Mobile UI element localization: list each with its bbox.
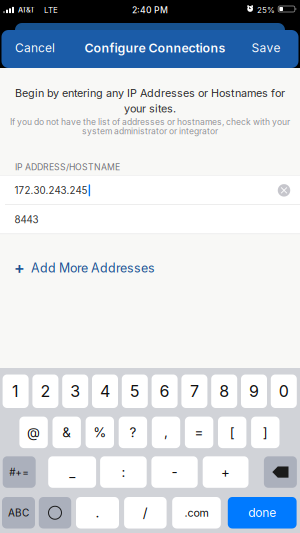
button[interactable]: Next keyboard (39, 497, 71, 528)
staticText: : (121, 464, 125, 480)
button[interactable]: ] (251, 417, 279, 448)
button[interactable]: / (124, 497, 167, 528)
button[interactable]: .com (172, 497, 221, 528)
button[interactable]: 172.30.243.245 (0, 176, 300, 205)
button[interactable]: @ (19, 417, 48, 448)
staticText: AT&T (18, 6, 35, 14)
staticText: _ (69, 464, 75, 480)
staticText: + (221, 464, 230, 480)
staticText: 1 (12, 382, 19, 401)
button[interactable]: 8 (211, 374, 237, 408)
button[interactable]: 9 (241, 374, 267, 408)
button[interactable]: 3 (62, 374, 88, 408)
button[interactable]: ABC (2, 497, 35, 528)
button[interactable]: _ (48, 456, 96, 488)
button[interactable]: done (228, 497, 297, 528)
staticText: system administrator or integrator (82, 126, 218, 136)
button[interactable]: Save (244, 34, 288, 62)
staticText: - (171, 464, 177, 480)
staticText: , (164, 424, 168, 440)
button[interactable]: ? (119, 417, 147, 448)
button[interactable]: Cancel (9, 34, 61, 62)
staticText: 4 (100, 382, 110, 401)
staticText: 9 (249, 382, 259, 401)
button[interactable]: = (185, 417, 213, 448)
staticText: If you do not have the list of addresses… (10, 117, 290, 127)
button[interactable]: , (152, 417, 180, 448)
staticText: ABC (8, 507, 29, 519)
staticText: + (14, 258, 25, 278)
button[interactable]: % (86, 417, 114, 448)
staticText: LTE (44, 5, 58, 15)
staticText: Cancel (15, 41, 55, 55)
button[interactable]: & (52, 417, 81, 448)
staticText: 7 (190, 382, 199, 401)
button[interactable]: 5 (122, 374, 148, 408)
staticText: ? (129, 424, 136, 440)
button[interactable]: 1 (3, 374, 29, 408)
staticText: 172.30.243.245 (14, 184, 87, 196)
button[interactable]: [ (218, 417, 246, 448)
staticText: . (95, 505, 99, 521)
staticText: / (143, 505, 148, 521)
button[interactable]: #+= (3, 456, 36, 488)
staticText: Add More Addresses (31, 260, 155, 275)
staticText: 2 (40, 382, 50, 401)
staticText: your sites. (124, 102, 176, 115)
button[interactable]: + (0, 253, 300, 283)
staticText: 8443 (14, 214, 38, 226)
staticText: IP ADDRESS/HOSTNAME (15, 162, 120, 172)
staticText: & (62, 424, 71, 440)
staticText: .com (184, 506, 208, 519)
staticText: [ (230, 424, 235, 440)
staticText: ] (263, 424, 268, 440)
staticText: Configure Connections (84, 40, 225, 55)
staticText: @ (27, 424, 40, 440)
button[interactable]: 7 (181, 374, 207, 408)
button[interactable]: . (76, 497, 119, 528)
button[interactable]: 6 (152, 374, 178, 408)
staticText: #+= (9, 466, 29, 478)
button[interactable]: + (203, 456, 248, 488)
button[interactable]: Delete (264, 456, 297, 488)
button[interactable]: Clear text (273, 179, 295, 201)
staticText: = (195, 424, 204, 440)
button[interactable]: - (151, 456, 198, 488)
staticText: 8 (219, 382, 229, 401)
staticText: 0 (279, 382, 289, 401)
staticText: 25% (257, 5, 275, 15)
staticText: Begin by entering any IP Addresses or Ho… (15, 86, 285, 100)
staticText: 6 (160, 382, 170, 401)
staticText: done (248, 505, 276, 520)
button[interactable]: 8443 (0, 205, 300, 234)
button[interactable]: 4 (92, 374, 118, 408)
button[interactable]: : (100, 456, 147, 488)
staticText: 3 (70, 382, 80, 401)
staticText: % (93, 424, 106, 440)
staticText: 2:40 PM (132, 5, 168, 15)
staticText: 5 (130, 382, 140, 401)
button[interactable]: 0 (271, 374, 297, 408)
staticText: Save (251, 41, 280, 55)
button[interactable]: 2 (32, 374, 58, 408)
